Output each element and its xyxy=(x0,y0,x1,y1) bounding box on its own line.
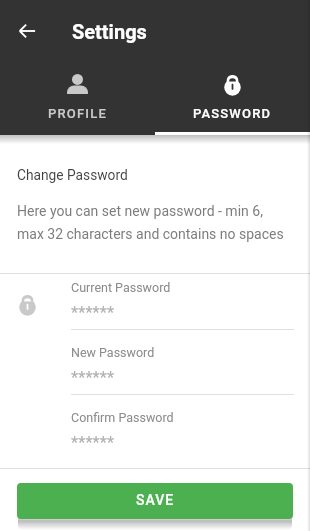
button[interactable]: Back xyxy=(0,0,56,62)
staticText: Confirm Password xyxy=(71,410,174,425)
staticText: Current Password xyxy=(71,280,171,295)
staticText: Settings xyxy=(72,20,147,43)
staticText: New Password xyxy=(71,345,155,360)
staticText: ****** xyxy=(71,303,115,322)
button[interactable]: PROFILE xyxy=(0,62,155,135)
button[interactable]: PASSWORD xyxy=(155,62,310,135)
staticText: ****** xyxy=(71,368,115,387)
staticText: PASSWORD xyxy=(193,106,272,121)
staticText: ****** xyxy=(71,433,115,452)
staticText: PROFILE xyxy=(48,106,108,121)
staticText: Here you can set new password - min 6, m… xyxy=(17,203,284,242)
staticText: Change Password xyxy=(17,167,128,183)
button[interactable]: SAVE xyxy=(17,483,293,519)
staticText: SAVE xyxy=(136,492,175,508)
